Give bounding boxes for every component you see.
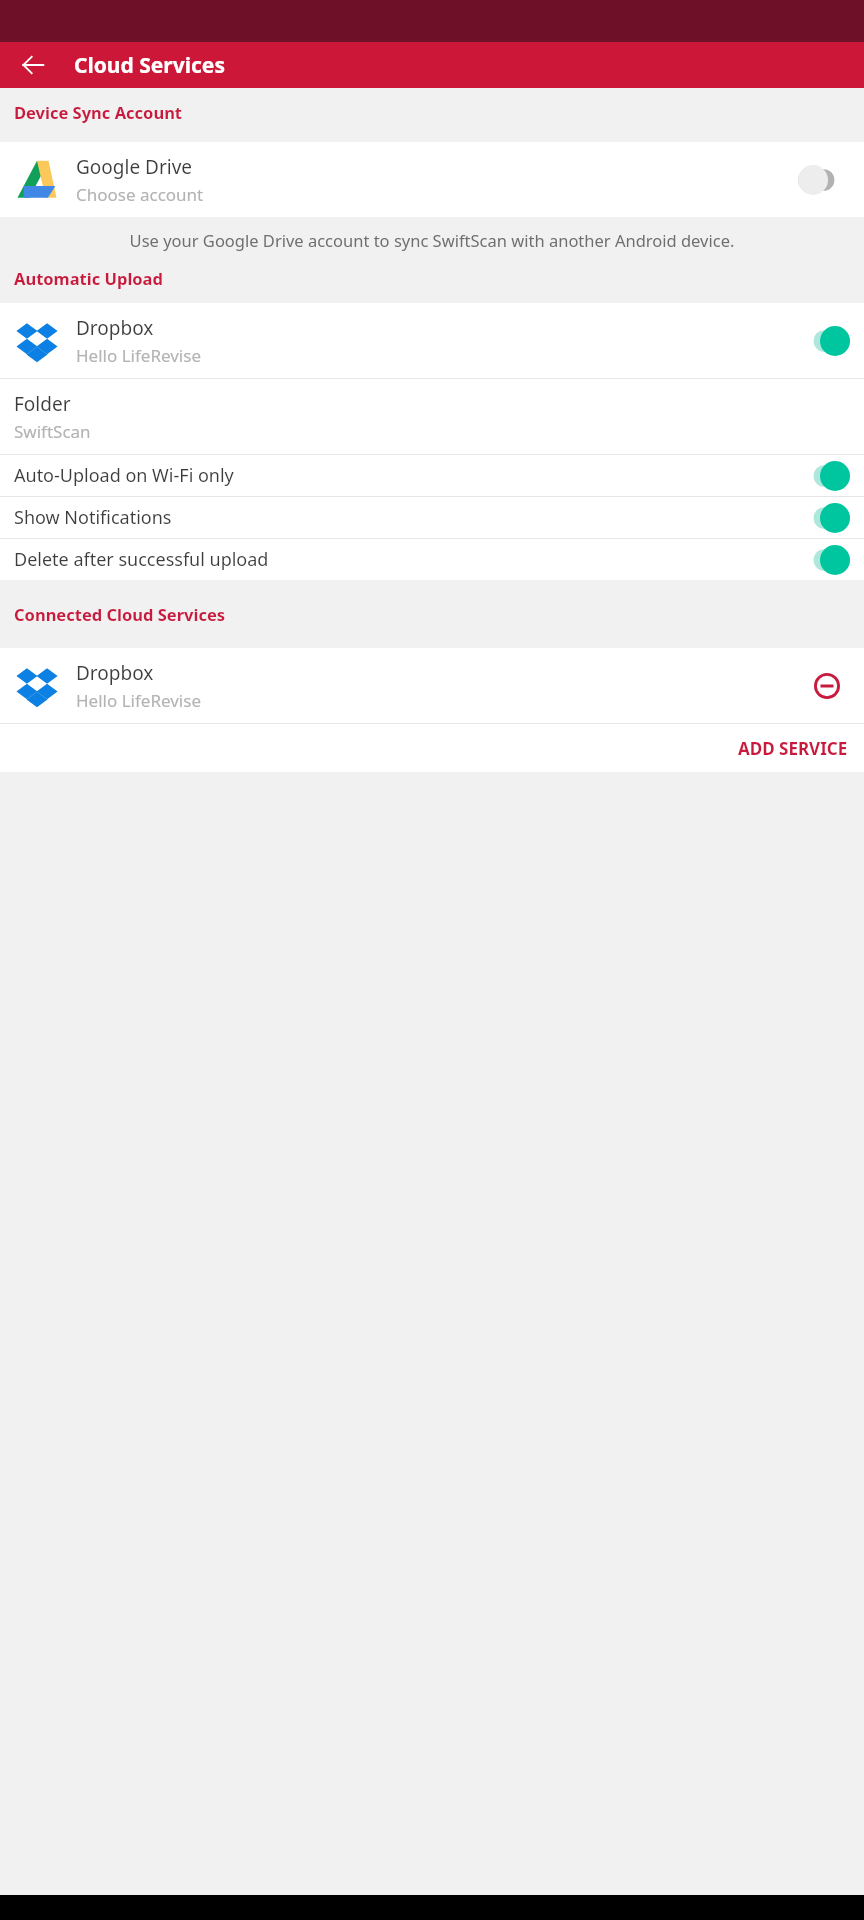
button[interactable]: Remove service (804, 663, 850, 709)
staticText: Device Sync Account (14, 101, 183, 123)
button[interactable]: Toggle on (798, 461, 850, 491)
staticText: Delete after successful upload (14, 547, 798, 572)
staticText: Show Notifications (14, 505, 798, 530)
button[interactable]: Auto-Upload on Wi-Fi only (0, 455, 864, 496)
staticText: Hello LifeRevise (76, 689, 201, 712)
button[interactable]: Back (10, 42, 56, 88)
staticText: Cloud Services (74, 51, 225, 80)
button[interactable]: Toggle on (798, 545, 850, 575)
staticText: Connected Cloud Services (14, 603, 226, 625)
button[interactable]: Show Notifications (0, 497, 864, 538)
staticText: Automatic Upload (14, 267, 163, 289)
button[interactable]: Toggle off (798, 165, 850, 195)
button[interactable]: Dropbox (0, 303, 864, 378)
staticText: Auto-Upload on Wi-Fi only (14, 463, 798, 488)
staticText: Folder (14, 391, 71, 417)
button[interactable]: Google Drive (0, 142, 864, 217)
button[interactable]: Dropbox (0, 648, 864, 723)
button[interactable]: Folder (0, 379, 864, 454)
button[interactable]: ADD SERVICE (722, 724, 864, 772)
button[interactable]: Toggle on (798, 326, 850, 356)
button[interactable]: Delete after successful upload (0, 539, 864, 580)
button[interactable]: Toggle on (798, 503, 850, 533)
staticText: Choose account (76, 183, 204, 206)
staticText: Use your Google Drive account to sync Sw… (12, 229, 852, 251)
staticText: ADD SERVICE (738, 737, 848, 760)
staticText: Google Drive (76, 154, 193, 180)
staticText: Dropbox (76, 660, 154, 686)
staticText: SwiftScan (14, 420, 91, 443)
staticText: Hello LifeRevise (76, 344, 201, 367)
staticText: Dropbox (76, 315, 154, 341)
